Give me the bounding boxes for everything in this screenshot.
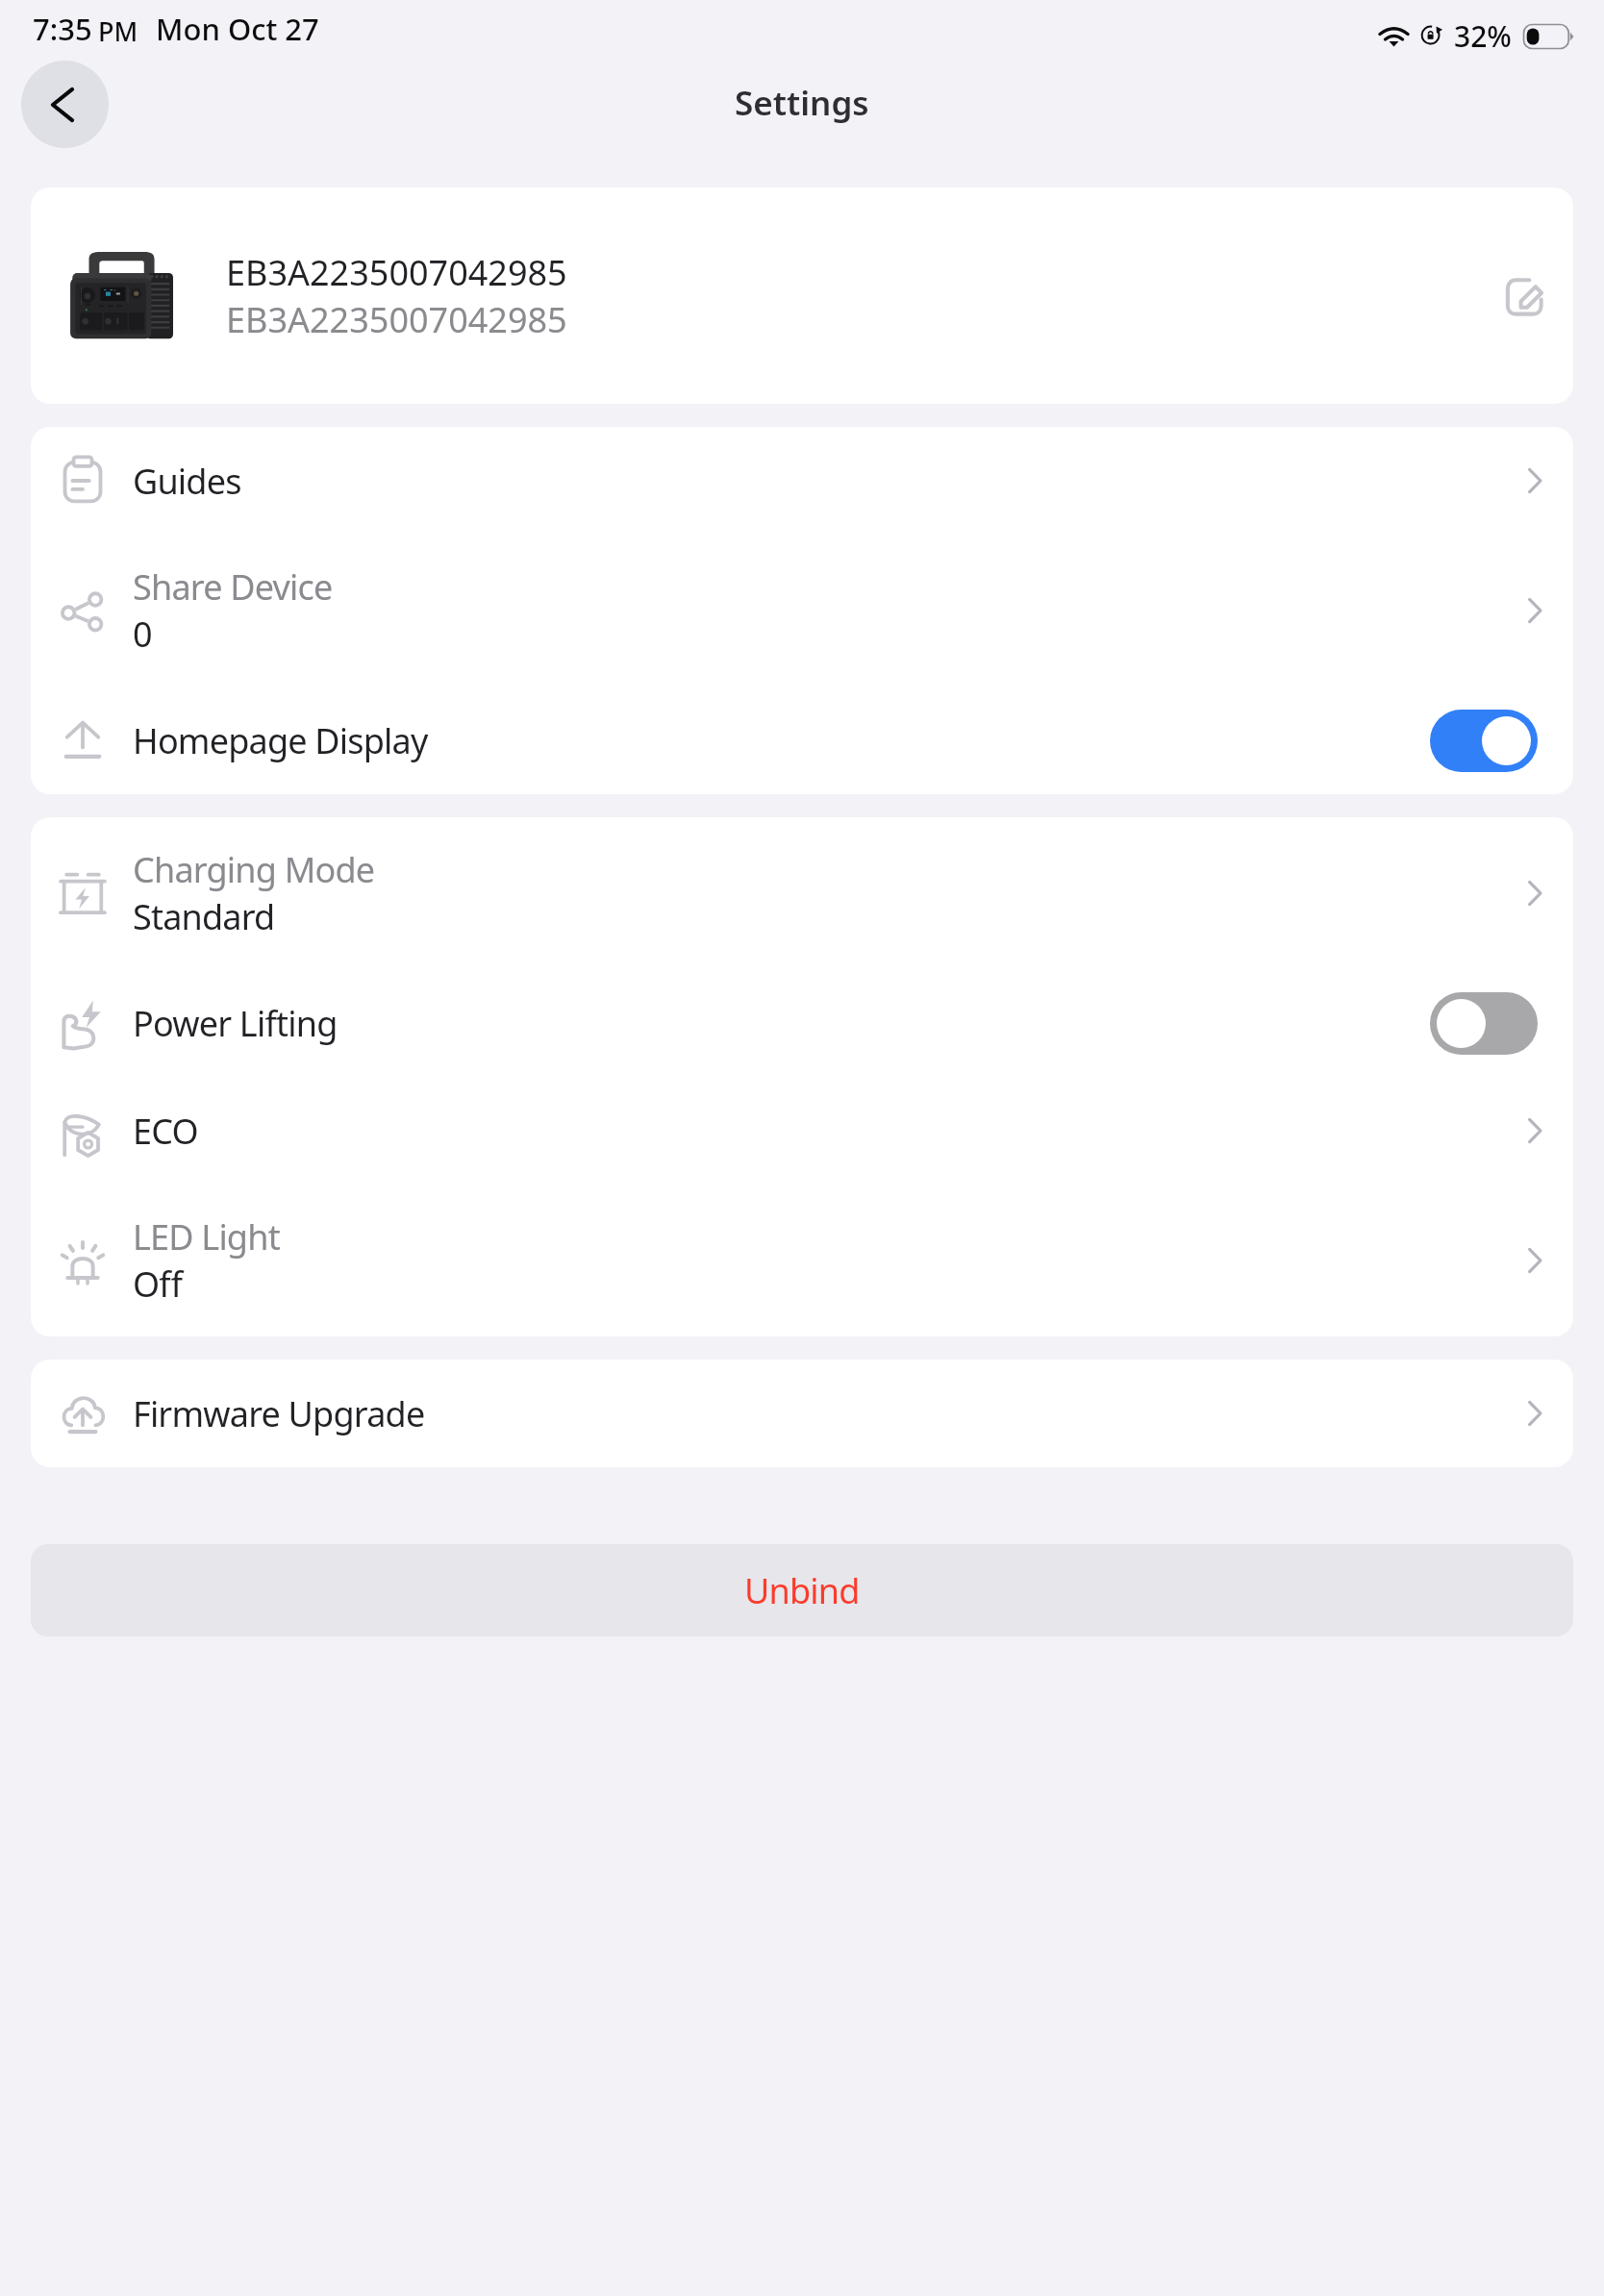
staticText: Share Device	[133, 563, 333, 611]
button[interactable]: Unbind	[31, 1544, 1573, 1636]
button[interactable]: Back	[21, 61, 109, 148]
button[interactable]: Switch on	[1430, 710, 1538, 772]
button[interactable]: EB3A2235007042985	[31, 187, 1573, 404]
staticText: Unbind	[744, 1567, 860, 1614]
staticText: Firmware Upgrade	[133, 1390, 425, 1437]
staticText: Mon Oct 27	[156, 9, 319, 49]
staticText: Guides	[133, 458, 241, 505]
button[interactable]: Edit device name	[1486, 258, 1563, 335]
staticText: ECO	[133, 1108, 198, 1155]
button[interactable]: LED Light	[31, 1185, 1573, 1336]
button[interactable]: Charging Mode	[31, 817, 1573, 969]
staticText: Charging Mode	[133, 846, 375, 893]
button[interactable]: Power Lifting	[31, 969, 1573, 1077]
staticText: EB3A2235007042985	[226, 249, 567, 296]
staticText: 0	[133, 611, 152, 658]
staticText: EB3A2235007042985	[226, 296, 567, 343]
staticText: LED Light	[133, 1213, 280, 1260]
button[interactable]: Switch off	[1430, 992, 1538, 1055]
staticText: PM	[98, 13, 138, 49]
staticText: Settings	[735, 80, 869, 126]
button[interactable]: Share Device	[31, 535, 1573, 686]
staticText: 7:35	[33, 9, 92, 49]
staticText: Off	[133, 1260, 183, 1308]
staticText: Power Lifting	[133, 1000, 338, 1047]
button[interactable]: Firmware Upgrade	[31, 1360, 1573, 1467]
button[interactable]: ECO	[31, 1077, 1573, 1185]
staticText: 32%	[1454, 16, 1512, 56]
staticText: Standard	[133, 893, 275, 940]
staticText: Homepage Display	[133, 717, 428, 764]
button[interactable]: Homepage Display	[31, 686, 1573, 794]
button[interactable]: Guides	[31, 427, 1573, 535]
